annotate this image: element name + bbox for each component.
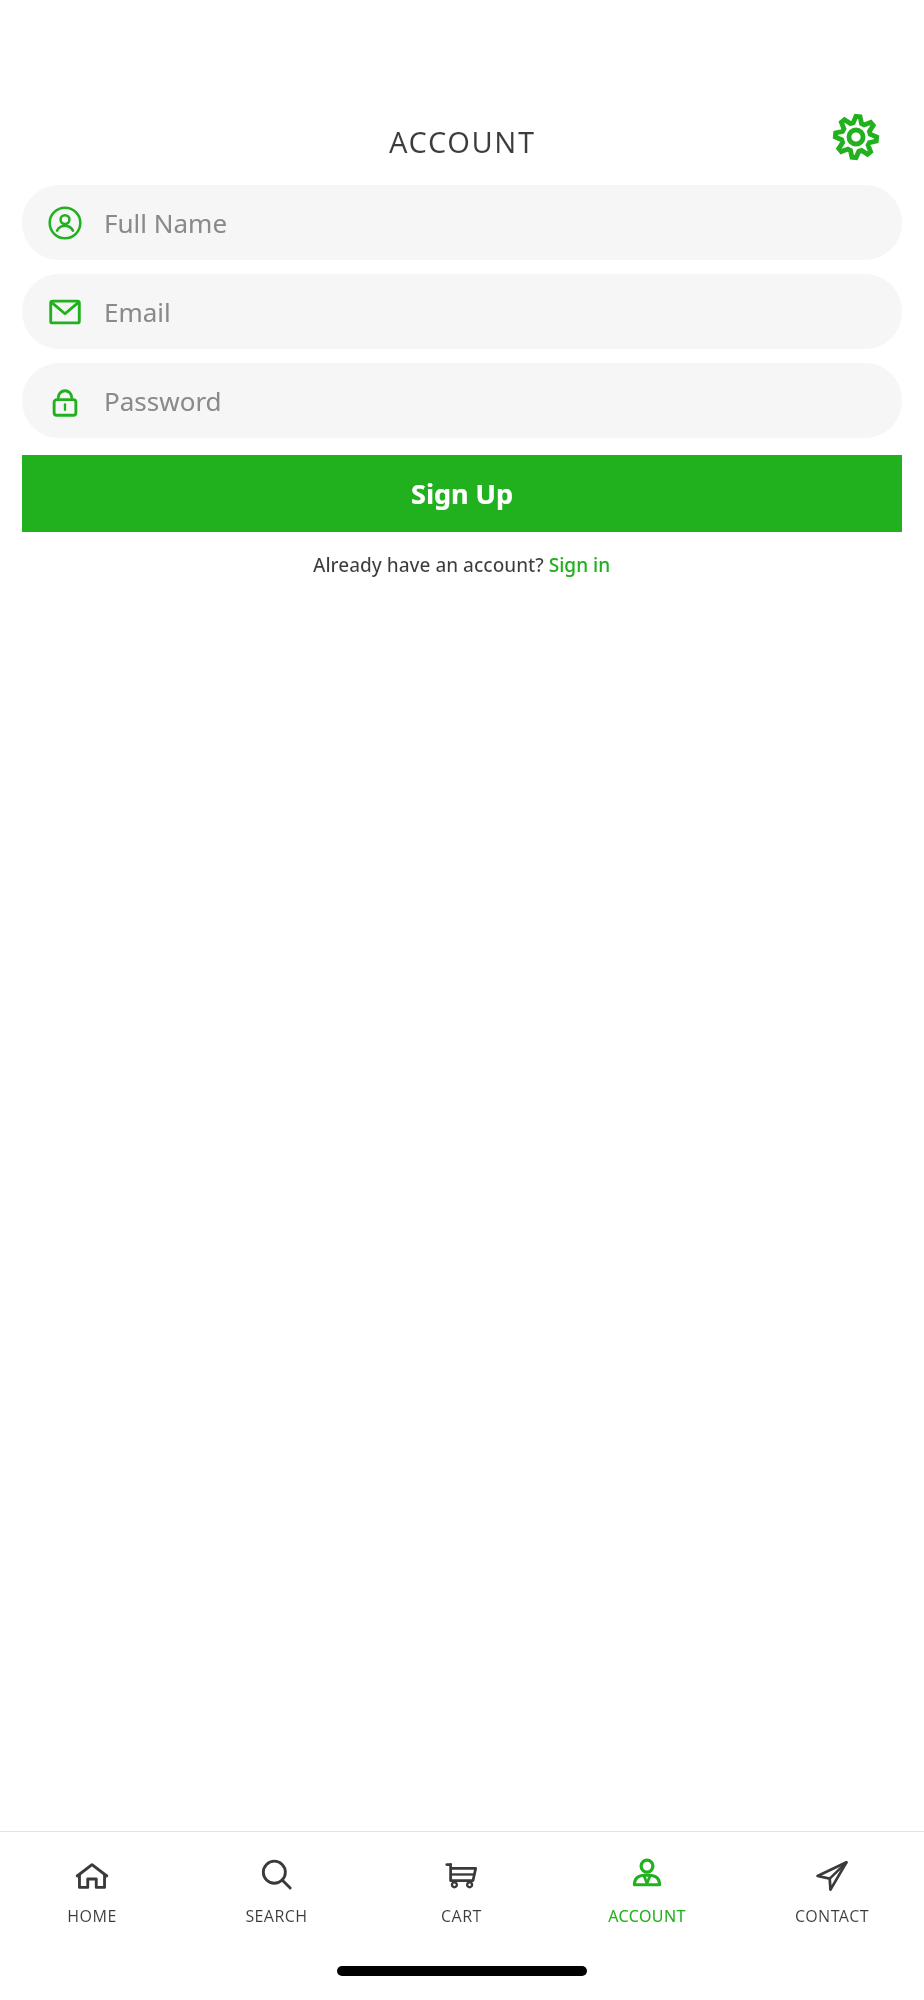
button[interactable]: SEARCH [184,1849,369,1935]
staticText: ACCOUNT [389,122,536,161]
button[interactable]: CART [369,1849,554,1935]
button[interactable]: Settings [828,109,884,165]
staticText: CART [441,1905,482,1927]
staticText: CONTACT [795,1905,869,1927]
button[interactable]: ACCOUNT [554,1849,739,1935]
staticText: ACCOUNT [608,1905,686,1927]
button[interactable]: HOME [0,1849,184,1935]
staticText: Full Name [104,205,228,240]
button[interactable]: Sign Up [22,455,902,532]
button[interactable]: Full Name [22,185,902,260]
button[interactable]: Already have an account? Sign in [313,552,611,578]
staticText: Password [104,383,222,418]
staticText: SEARCH [245,1905,308,1927]
staticText: HOME [67,1905,117,1927]
staticText: Email [104,294,171,329]
button[interactable]: Password [22,363,902,438]
staticText: Sign Up [411,475,514,512]
button[interactable]: CONTACT [739,1849,924,1935]
staticText: Already have an account? Sign in [313,552,611,578]
button[interactable]: Email [22,274,902,349]
